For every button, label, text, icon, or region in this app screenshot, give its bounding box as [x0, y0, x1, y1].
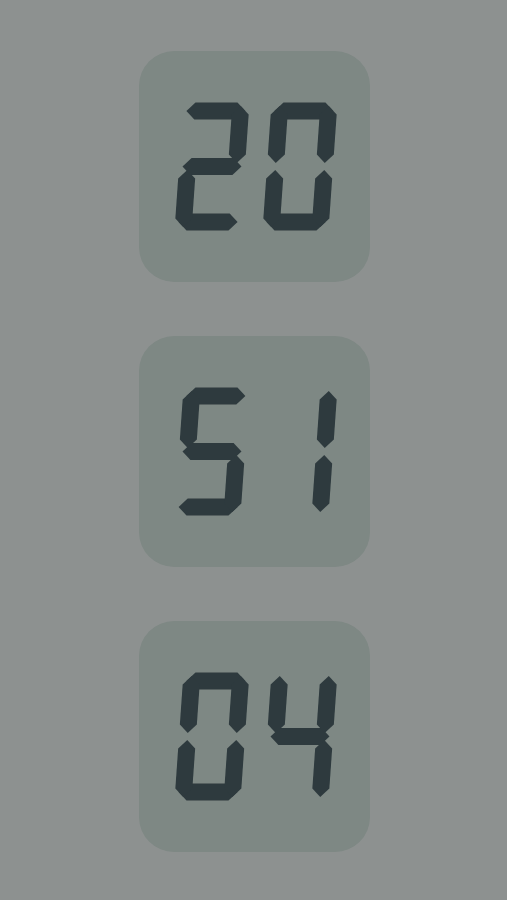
button[interactable]: Minutes 51 [139, 336, 370, 567]
button[interactable]: Hours 20 [139, 51, 370, 282]
button[interactable]: Seconds 04 [139, 621, 370, 852]
